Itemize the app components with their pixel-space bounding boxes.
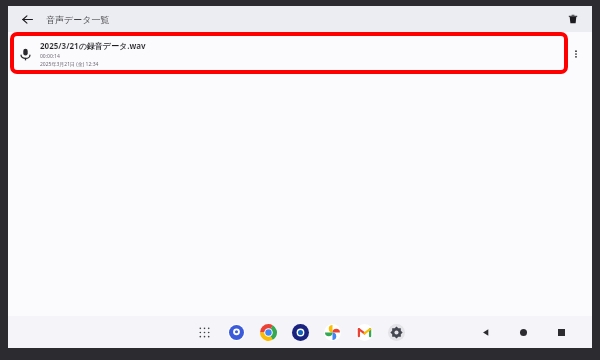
button[interactable]: Assistant — [226, 322, 246, 342]
button[interactable]: 2025/3/21の録音データ.wav — [8, 32, 592, 76]
button[interactable]: Back — [476, 323, 494, 341]
button[interactable]: Chrome — [258, 322, 278, 342]
button[interactable]: Settings — [386, 322, 406, 342]
staticText: 2025年3月21日 (金) 12:34 — [40, 61, 99, 68]
staticText: 音声データ一覧 — [46, 14, 110, 25]
button[interactable]: Delete — [562, 8, 584, 30]
button[interactable]: Home — [514, 323, 532, 341]
button[interactable]: Back — [16, 8, 38, 30]
button[interactable]: Gmail — [354, 322, 374, 342]
button[interactable]: Photos — [322, 322, 342, 342]
button[interactable]: Camera — [290, 322, 310, 342]
button[interactable]: All apps — [194, 322, 214, 342]
button[interactable]: More options — [566, 44, 586, 64]
button[interactable]: Recents — [552, 323, 570, 341]
staticText: 00:00:14 — [40, 53, 60, 60]
staticText: 2025/3/21の録音データ.wav — [40, 40, 146, 51]
